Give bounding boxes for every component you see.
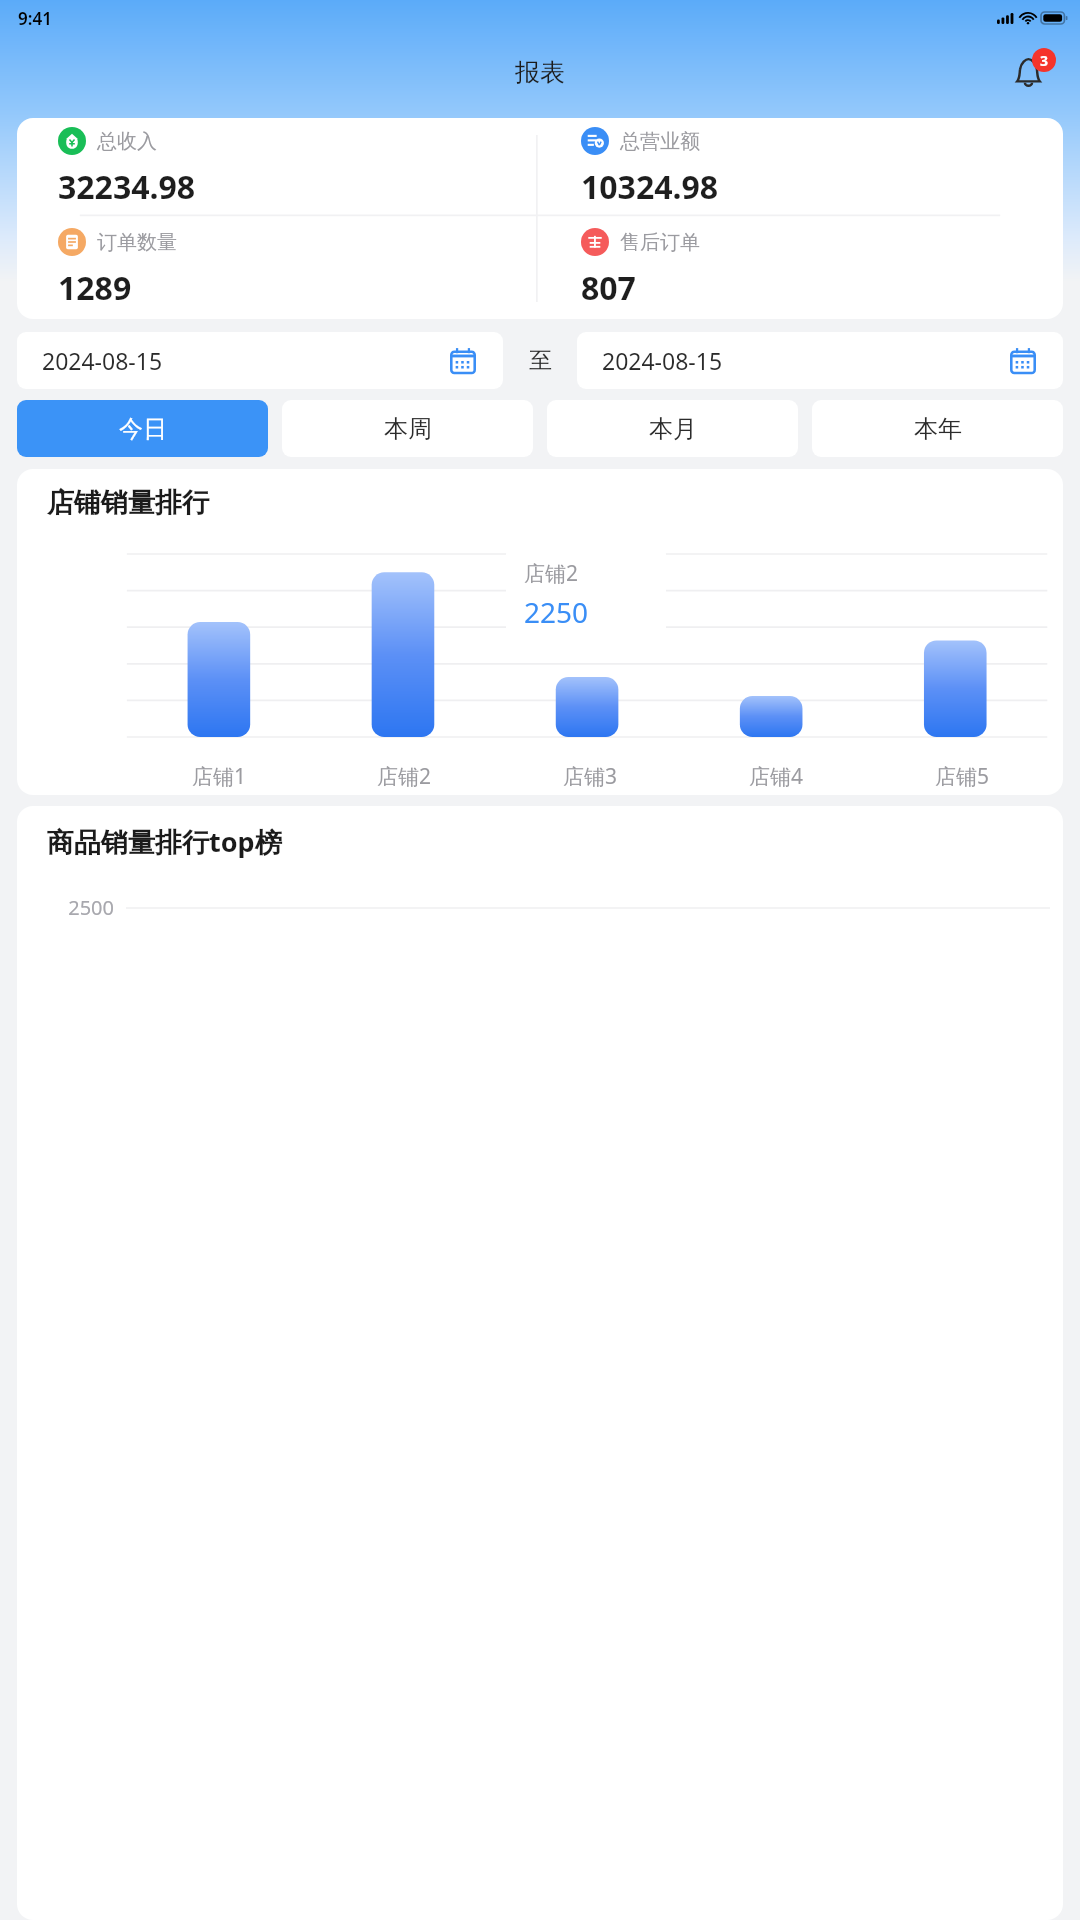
staticText: 本月	[649, 414, 697, 444]
staticText: 店铺5	[935, 762, 990, 791]
staticText: 店铺3	[563, 762, 618, 791]
staticText: 总营业额	[620, 129, 700, 154]
staticText: 2024-08-15	[602, 345, 723, 376]
staticText: 总收入	[97, 129, 157, 154]
button[interactable]: 总营业额	[581, 118, 1063, 218]
button[interactable]: Notifications	[1007, 49, 1055, 97]
staticText: 今日	[119, 414, 167, 444]
staticText: 10324.98	[581, 165, 719, 209]
staticText: 店铺2	[524, 559, 579, 588]
staticText: 商品销量排行top榜	[47, 823, 282, 860]
staticText: 本年	[914, 414, 962, 444]
button[interactable]: 订单数量	[58, 218, 540, 319]
button[interactable]: 本年	[812, 400, 1063, 457]
staticText: 订单数量	[97, 230, 177, 255]
staticText: 报表	[515, 57, 565, 88]
button[interactable]: 2024-08-15	[577, 332, 1063, 389]
staticText: 店铺销量排行	[47, 486, 209, 520]
staticText: 2500	[17, 894, 114, 921]
staticText: 本周	[384, 414, 432, 444]
button[interactable]: 总收入	[58, 118, 540, 218]
staticText: 3	[1040, 51, 1049, 70]
staticText: 至	[529, 346, 552, 375]
staticText: 2250	[524, 593, 589, 631]
staticText: 售后订单	[620, 230, 700, 255]
staticText: 店铺1	[192, 762, 247, 791]
staticText: 2024-08-15	[42, 345, 163, 376]
button[interactable]: 本月	[547, 400, 798, 457]
staticText: 店铺2	[377, 762, 432, 791]
staticText: 807	[581, 266, 636, 310]
button[interactable]: 售后订单	[581, 218, 1063, 319]
staticText: 32234.98	[58, 165, 196, 209]
button[interactable]: 本周	[282, 400, 533, 457]
staticText: 店铺4	[749, 762, 804, 791]
button[interactable]: 今日	[17, 400, 268, 457]
staticText: 1289	[58, 266, 132, 310]
staticText: 9:41	[18, 7, 52, 30]
button[interactable]: 2024-08-15	[17, 332, 503, 389]
